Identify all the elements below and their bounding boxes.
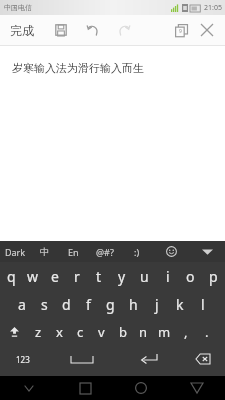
- button[interactable]: Backspace: [180, 346, 225, 372]
- button[interactable]: p: [202, 262, 225, 290]
- staticText: h: [129, 295, 138, 314]
- staticText: 9: [179, 28, 182, 35]
- button[interactable]: 完成: [6, 20, 38, 41]
- staticText: @#?: [96, 246, 114, 258]
- staticText: Dark: [5, 246, 26, 258]
- button[interactable]: r: [66, 262, 88, 290]
- button[interactable]: l: [191, 290, 214, 318]
- button[interactable]: Emoji: [153, 241, 189, 262]
- staticText: 123: [16, 354, 30, 365]
- staticText: :): [134, 246, 140, 258]
- staticText: c: [77, 323, 84, 341]
- button[interactable]: Redo: [112, 19, 134, 41]
- button[interactable]: i: [156, 262, 179, 290]
- button[interactable]: Back: [169, 376, 225, 400]
- button[interactable]: y: [110, 262, 133, 290]
- button[interactable]: ,: [175, 318, 196, 346]
- staticText: i: [166, 267, 170, 286]
- staticText: 中国电信: [4, 3, 32, 12]
- button[interactable]: Hide: [0, 376, 57, 400]
- staticText: t: [96, 267, 102, 286]
- button[interactable]: w: [22, 262, 44, 290]
- button[interactable]: z: [28, 318, 49, 346]
- staticText: b: [119, 323, 127, 341]
- button[interactable]: u: [133, 262, 156, 290]
- button[interactable]: :): [121, 241, 153, 262]
- button[interactable]: .: [196, 318, 217, 346]
- button[interactable]: 中: [31, 241, 57, 262]
- staticText: d: [62, 295, 71, 314]
- button[interactable]: Enter: [118, 346, 180, 372]
- staticText: u: [140, 267, 149, 286]
- button[interactable]: d: [55, 290, 77, 318]
- button[interactable]: Space: [45, 346, 118, 372]
- staticText: l: [201, 295, 205, 314]
- staticText: a: [18, 295, 26, 314]
- staticText: f: [86, 295, 91, 314]
- button[interactable]: Home: [113, 376, 169, 400]
- button[interactable]: Tabs: [169, 18, 193, 42]
- button[interactable]: m: [154, 318, 175, 346]
- staticText: v: [98, 323, 105, 341]
- staticText: x: [56, 323, 63, 341]
- staticText: n: [139, 323, 148, 341]
- button[interactable]: h: [122, 290, 145, 318]
- staticText: m: [158, 323, 171, 341]
- staticText: q: [7, 267, 16, 286]
- staticText: s: [41, 295, 48, 314]
- button[interactable]: Save: [50, 19, 72, 41]
- button[interactable]: Close: [195, 18, 219, 42]
- staticText: j: [155, 295, 159, 314]
- button[interactable]: b: [112, 318, 133, 346]
- staticText: k: [176, 295, 184, 314]
- button[interactable]: Dark: [0, 241, 31, 262]
- button[interactable]: j: [145, 290, 168, 318]
- button[interactable]: 123: [0, 346, 45, 372]
- button[interactable]: c: [70, 318, 91, 346]
- button[interactable]: s: [33, 290, 55, 318]
- staticText: ,: [184, 323, 188, 341]
- button[interactable]: o: [179, 262, 202, 290]
- button[interactable]: t: [88, 262, 110, 290]
- staticText: w: [27, 267, 39, 286]
- button[interactable]: Undo: [82, 19, 104, 41]
- staticText: y: [118, 267, 126, 286]
- staticText: .: [205, 323, 209, 341]
- button[interactable]: k: [168, 290, 191, 318]
- staticText: p: [209, 267, 218, 286]
- button[interactable]: f: [77, 290, 99, 318]
- button[interactable]: @#?: [89, 241, 121, 262]
- button[interactable]: e: [44, 262, 66, 290]
- staticText: 21:05: [204, 3, 222, 13]
- staticText: r: [74, 267, 80, 286]
- staticText: g: [106, 295, 115, 314]
- staticText: En: [68, 246, 79, 258]
- button[interactable]: x: [49, 318, 70, 346]
- button[interactable]: Recents: [57, 376, 113, 400]
- button[interactable]: v: [91, 318, 112, 346]
- staticText: e: [51, 267, 59, 286]
- button[interactable]: g: [99, 290, 122, 318]
- staticText: z: [35, 323, 42, 341]
- staticText: 完成: [10, 23, 34, 38]
- button[interactable]: Hide keyboard: [189, 241, 225, 262]
- button[interactable]: q: [0, 262, 22, 290]
- staticText: 中: [40, 246, 49, 257]
- staticText: 岁寒输入法为滑行输入而生: [12, 61, 144, 75]
- staticText: o: [186, 267, 195, 286]
- button[interactable]: a: [11, 290, 33, 318]
- button[interactable]: n: [133, 318, 154, 346]
- button[interactable]: Shift: [0, 318, 28, 346]
- button[interactable]: En: [57, 241, 89, 262]
